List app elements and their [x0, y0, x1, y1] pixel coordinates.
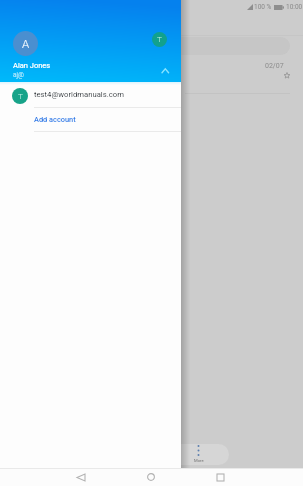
staticText: T [157, 35, 162, 44]
staticText: A [22, 37, 30, 50]
staticText: Add account [34, 115, 76, 124]
button[interactable]: Search [166, 37, 290, 55]
staticText: 02/07 [265, 62, 284, 70]
staticText: T [18, 92, 23, 101]
button[interactable]: Account avatar [13, 31, 38, 56]
button[interactable]: Recent apps [203, 468, 238, 486]
staticText: test4@worldmanuals.com [34, 90, 124, 99]
staticText: More [194, 458, 204, 463]
button[interactable]: Home [133, 468, 168, 486]
button[interactable]: Back [63, 468, 98, 486]
button[interactable]: More [120, 444, 229, 465]
staticText: Alan Jones [13, 61, 51, 70]
button[interactable]: T [0, 82, 181, 107]
staticText: 100 % [254, 3, 272, 11]
button[interactable]: Collapse accounts [155, 62, 175, 80]
button[interactable]: Switch account [152, 32, 167, 47]
button[interactable]: Star [281, 70, 293, 82]
button[interactable]: Add account [0, 108, 181, 131]
staticText: aj@ [13, 71, 24, 79]
staticText: 10:00 [286, 3, 303, 11]
